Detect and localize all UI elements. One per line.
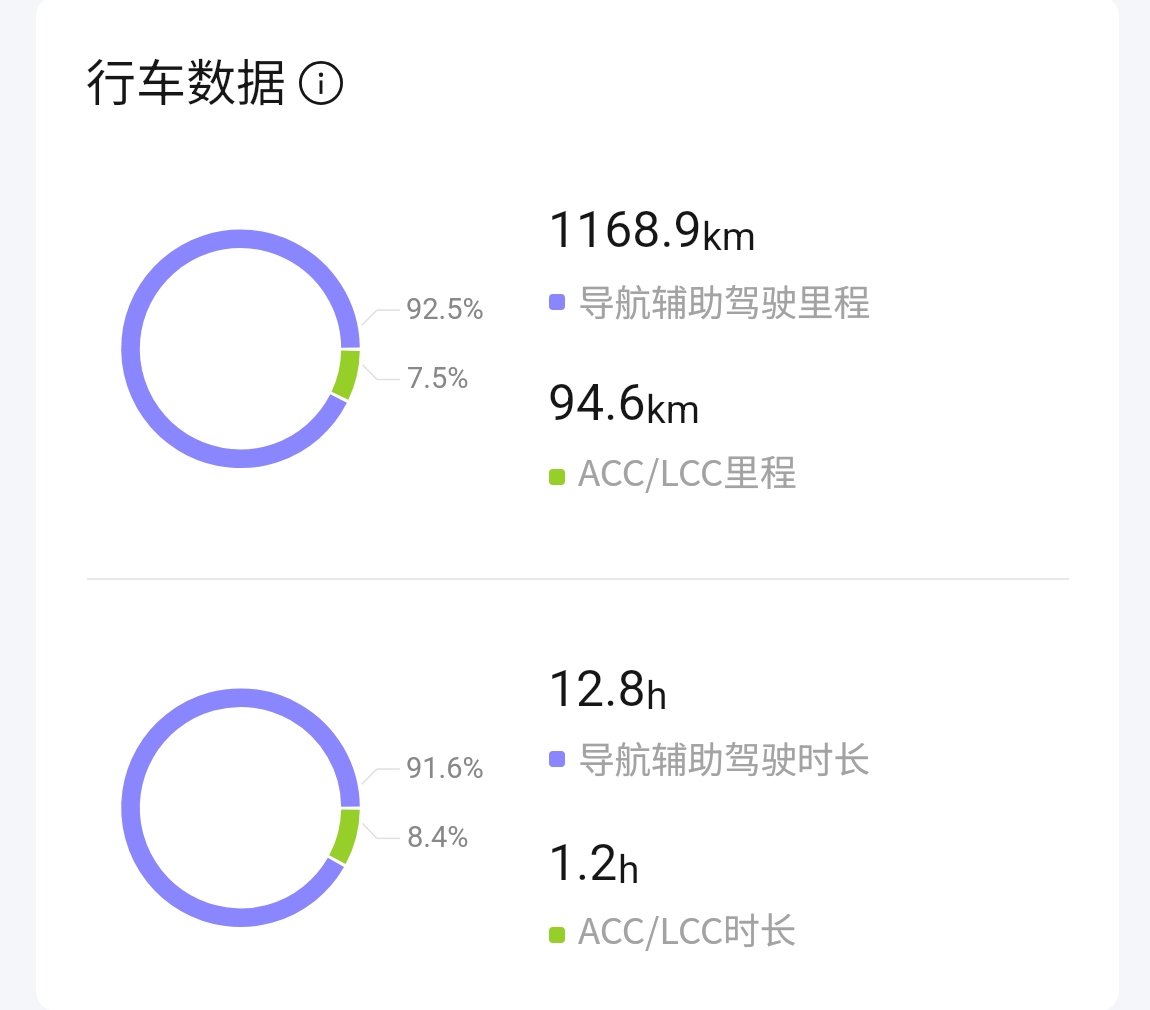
- staticText: 1.2: [548, 834, 618, 893]
- staticText: 行车数据: [86, 43, 286, 109]
- button[interactable]: ACC/LCC里程: [549, 444, 889, 496]
- button[interactable]: 导航辅助驾驶里程: [549, 274, 889, 326]
- staticText: 12.8: [548, 660, 646, 719]
- button[interactable]: About driving data: [299, 61, 343, 105]
- staticText: h: [618, 847, 640, 893]
- staticText: 8.4%: [407, 820, 469, 854]
- staticText: h: [646, 673, 668, 719]
- staticText: 91.6%: [406, 751, 484, 785]
- staticText: 92.5%: [406, 292, 484, 326]
- staticText: km: [646, 387, 700, 433]
- staticText: 94.6: [548, 374, 646, 433]
- staticText: 导航辅助驾驶时长: [578, 731, 870, 783]
- staticText: 7.5%: [407, 361, 469, 395]
- button[interactable]: ACC/LCC时长: [549, 902, 889, 954]
- staticText: 1168.9: [548, 201, 702, 260]
- button[interactable]: 导航辅助驾驶时长: [549, 731, 889, 783]
- staticText: ACC/LCC里程: [578, 444, 797, 496]
- button[interactable]: 行车数据: [86, 43, 296, 109]
- staticText: ACC/LCC时长: [578, 902, 797, 954]
- staticText: km: [702, 214, 756, 260]
- staticText: 导航辅助驾驶里程: [578, 274, 870, 326]
